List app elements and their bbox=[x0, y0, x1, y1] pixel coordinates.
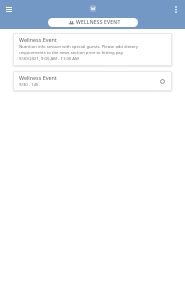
button[interactable]: Wellness Event bbox=[13, 33, 172, 66]
staticText: 9/30 - 145 bbox=[19, 82, 39, 88]
staticText: 9/30/2021, 9:00 AM - 11:00 AM bbox=[19, 56, 79, 62]
button[interactable]: Menu bbox=[3, 3, 15, 15]
button[interactable]: More options bbox=[170, 3, 182, 15]
staticText: WELLNESS EVENT bbox=[76, 19, 121, 26]
button[interactable]: Wellness Event bbox=[13, 71, 172, 91]
staticText: Nutrition info session with special gues… bbox=[19, 44, 147, 56]
button[interactable]: Select event bbox=[158, 77, 167, 86]
button[interactable]: WELLNESS EVENT bbox=[48, 18, 138, 27]
staticText: Wellness Event bbox=[19, 36, 57, 43]
staticText: Wellness Event bbox=[19, 74, 57, 81]
